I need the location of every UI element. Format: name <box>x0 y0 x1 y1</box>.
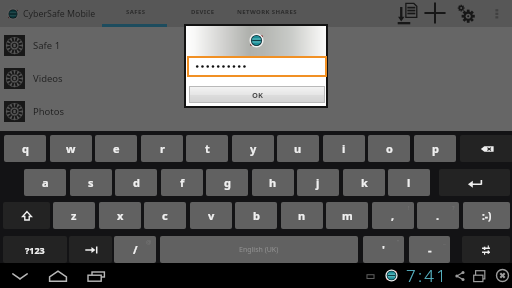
staticText: e <box>113 141 120 156</box>
button[interactable]: x <box>99 202 141 229</box>
staticText: English (UK) <box>239 245 279 255</box>
staticText: s <box>88 175 94 190</box>
button[interactable]: ' <box>363 236 404 263</box>
button[interactable]: u <box>277 135 319 162</box>
button[interactable]: j <box>297 169 339 196</box>
staticText: j <box>316 175 320 190</box>
staticText: ?123 <box>25 244 45 256</box>
button[interactable]: w <box>50 135 92 162</box>
staticText: y <box>250 141 257 156</box>
staticText: o <box>386 141 393 156</box>
button[interactable]: backspace <box>460 135 512 162</box>
staticText: m <box>342 208 353 223</box>
button[interactable]: CyberSafe Mobile <box>0 0 96 27</box>
button[interactable]: Photos <box>0 95 130 128</box>
button[interactable]: NETWORK SHARES <box>237 0 297 27</box>
button[interactable]: a <box>24 169 66 196</box>
button[interactable]: b <box>235 202 277 229</box>
button[interactable]: Recent apps <box>83 263 108 288</box>
staticText: Photos <box>33 105 65 118</box>
staticText: :-) <box>482 209 492 223</box>
staticText: ! <box>408 204 410 212</box>
staticText: NETWORK SHARES <box>237 8 297 16</box>
staticText: SAFES <box>126 8 146 16</box>
staticText: w <box>66 141 76 156</box>
button[interactable]: n <box>281 202 323 229</box>
staticText: OK <box>252 90 263 100</box>
button[interactable]: h <box>252 169 294 196</box>
staticText: q <box>22 141 29 156</box>
staticText: h <box>269 175 277 190</box>
button[interactable]: SAFES <box>102 0 169 27</box>
button[interactable]: t <box>186 135 228 162</box>
staticText: d <box>133 175 140 190</box>
button[interactable]: Safe 1 <box>0 29 130 62</box>
button[interactable]: f <box>161 169 203 196</box>
button[interactable]: Close <box>494 263 510 288</box>
button[interactable]: tab <box>69 236 112 263</box>
staticText: z <box>71 208 77 223</box>
staticText: v <box>208 208 215 223</box>
staticText: i <box>342 141 346 156</box>
button[interactable] <box>189 58 325 75</box>
button[interactable]: Hide keyboard <box>8 263 32 288</box>
button[interactable]: g <box>206 169 248 196</box>
staticText: c <box>162 208 168 223</box>
button[interactable]: :-) <box>463 202 510 229</box>
staticText: g <box>224 175 231 190</box>
staticText: k <box>361 175 368 190</box>
staticText: @ <box>146 238 152 246</box>
staticText: - <box>428 242 432 257</box>
button[interactable]: z <box>53 202 95 229</box>
staticText: l <box>407 175 411 190</box>
staticText: Safe 1 <box>33 39 61 52</box>
staticText: b <box>253 208 260 223</box>
button[interactable]: e <box>95 135 137 162</box>
staticText: CyberSafe Mobile <box>23 8 96 20</box>
button[interactable]: Settings <box>452 0 480 27</box>
button[interactable]: Import <box>392 0 420 27</box>
button[interactable]: r <box>141 135 183 162</box>
button[interactable]: d <box>115 169 157 196</box>
staticText: f <box>180 175 185 190</box>
button[interactable]: p <box>414 135 456 162</box>
button[interactable]: Add <box>424 0 446 27</box>
staticText: x <box>117 208 124 223</box>
button[interactable]: o <box>368 135 410 162</box>
staticText: 7:41 <box>406 264 449 287</box>
button[interactable]: ?123 <box>3 236 67 263</box>
staticText: a <box>42 175 49 190</box>
staticText: / <box>133 242 138 257</box>
button[interactable]: Share <box>452 263 469 288</box>
button[interactable]: enter <box>439 169 510 196</box>
staticText: DEVICE <box>191 8 215 16</box>
button[interactable]: Videos <box>0 62 130 95</box>
button[interactable]: . <box>417 202 459 229</box>
button[interactable]: English (UK) <box>160 236 358 263</box>
button[interactable]: / <box>114 236 156 263</box>
button[interactable]: k <box>343 169 385 196</box>
button[interactable]: v <box>190 202 232 229</box>
button[interactable]: shift <box>3 202 50 229</box>
button[interactable]: i <box>323 135 365 162</box>
button[interactable]: l <box>388 169 430 196</box>
button[interactable]: Screenshot <box>470 263 490 288</box>
button[interactable]: , <box>372 202 414 229</box>
button[interactable]: q <box>4 135 46 162</box>
button[interactable]: OK <box>189 86 325 103</box>
button[interactable]: More options <box>486 0 508 27</box>
button[interactable]: Home <box>45 263 70 288</box>
button[interactable]: c <box>144 202 186 229</box>
button[interactable]: s <box>70 169 112 196</box>
staticText: p <box>432 141 439 156</box>
staticText: . <box>436 208 440 223</box>
button[interactable]: y <box>232 135 274 162</box>
button[interactable]: DEVICE <box>171 0 235 27</box>
staticText: u <box>294 141 302 156</box>
button[interactable]: kbset <box>462 236 510 263</box>
button[interactable]: - <box>409 236 450 263</box>
button[interactable]: m <box>326 202 368 229</box>
staticText: ' <box>382 242 385 257</box>
staticText: , <box>391 208 395 223</box>
